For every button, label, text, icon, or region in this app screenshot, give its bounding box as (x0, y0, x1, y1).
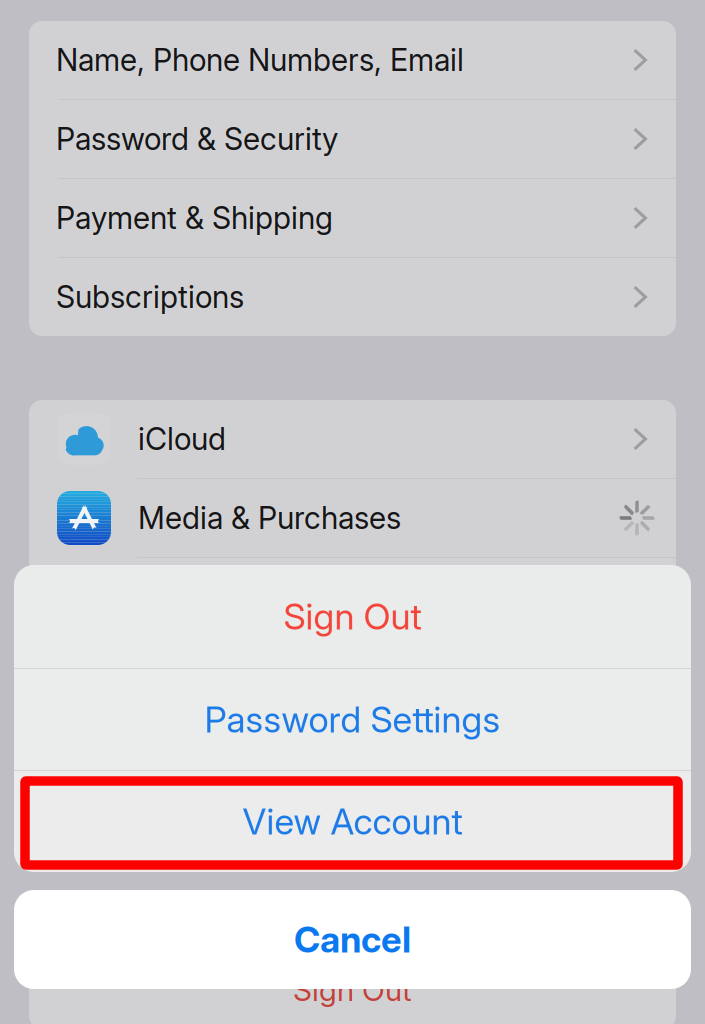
button[interactable]: Name, Phone Numbers, Email (29, 21, 676, 99)
button[interactable]: Cancel (14, 890, 691, 989)
staticText: Cancel (294, 918, 411, 961)
staticText: Family Sharing (56, 658, 258, 694)
staticText: Sign Out (283, 595, 421, 638)
button[interactable]: Sign Out (29, 951, 676, 1024)
button[interactable]: iCloud (29, 400, 676, 478)
button[interactable]: Sign Out (14, 565, 691, 668)
button[interactable]: Password & Security (29, 100, 676, 178)
staticText: Password & Security (56, 121, 338, 157)
staticText: Sign Out (293, 972, 412, 1008)
staticText: Password Settings (204, 698, 500, 741)
staticText: Payment & Shipping (56, 200, 333, 236)
button[interactable]: Find My (29, 558, 676, 636)
button[interactable]: Password Settings (14, 669, 691, 770)
button[interactable]: Subscriptions (29, 258, 676, 336)
staticText: Media & Purchases (138, 500, 401, 536)
staticText: Subscriptions (56, 279, 244, 315)
staticText: iCloud (138, 421, 226, 457)
staticText: Name, Phone Numbers, Email (56, 42, 464, 78)
button[interactable]: View Account (14, 771, 691, 872)
button[interactable]: Family Sharing (29, 637, 676, 715)
staticText: View Account (242, 800, 462, 843)
button[interactable]: Media & Purchases (29, 479, 676, 557)
button[interactable]: Payment & Shipping (29, 179, 676, 257)
